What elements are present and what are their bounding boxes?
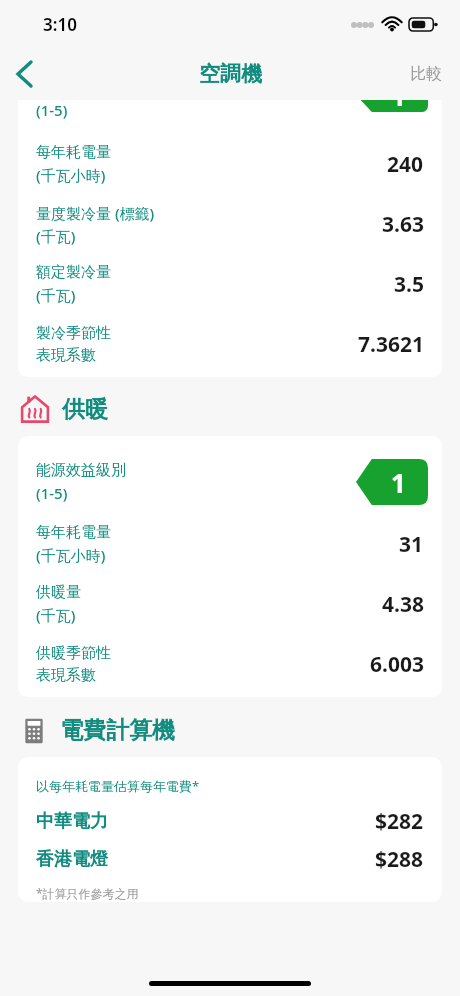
staticText: 3:10 [43, 13, 77, 36]
staticText: 能源效益級別 [36, 461, 126, 480]
staticText: 31 [399, 530, 424, 559]
staticText: (千瓦) [36, 285, 76, 305]
staticText: 空調機 [199, 61, 262, 87]
button[interactable]: 中華電力 [36, 807, 424, 836]
staticText: (千瓦) [36, 605, 76, 625]
staticText: 供暖季節性 [36, 644, 111, 663]
button[interactable]: 量度製冷量 (標籤) [18, 194, 442, 254]
staticText: (千瓦) [36, 226, 76, 246]
staticText: 香港電燈 [36, 848, 375, 871]
button[interactable]: 香港電燈 [36, 845, 424, 874]
button[interactable]: 每年耗電量 [18, 514, 442, 574]
staticText: 製冷季節性 [36, 324, 111, 343]
staticText: 表現系數 [36, 346, 96, 365]
staticText: 中華電力 [36, 810, 375, 833]
staticText: 1 [391, 465, 406, 500]
staticText: 每年耗電量 [36, 523, 111, 542]
staticText: (1-5) [36, 483, 68, 503]
button[interactable]: 額定製冷量 [18, 254, 442, 314]
staticText: *計算只作參考之用 [36, 885, 139, 901]
staticText: (1-5) [36, 100, 68, 120]
staticText: 1 [391, 100, 406, 112]
staticText: 電費計算機 [60, 716, 175, 745]
button[interactable]: 能源效益級別 [18, 450, 442, 514]
staticText: 供暖量 [36, 583, 81, 602]
button[interactable]: 比較 [392, 54, 460, 94]
staticText: 7.3621 [358, 330, 424, 359]
staticText: 量度製冷量 (標籤) [36, 203, 155, 223]
staticText: 表現系數 [36, 666, 96, 685]
staticText: (千瓦小時) [36, 165, 106, 185]
staticText: 額定製冷量 [36, 263, 111, 282]
staticText: 每年耗電量 [36, 143, 111, 162]
staticText: 3.5 [394, 270, 424, 299]
button[interactable]: 製冷季節性 [18, 314, 442, 374]
staticText: 供暖 [62, 395, 108, 424]
button[interactable]: 每年耗電量 [18, 134, 442, 194]
staticText: 比較 [410, 64, 442, 84]
staticText: (千瓦小時) [36, 545, 106, 565]
staticText: 以每年耗電量估算每年電費* [36, 777, 200, 795]
staticText: 240 [387, 150, 424, 179]
staticText: 6.003 [370, 650, 424, 679]
button[interactable]: 供暖季節性 [18, 634, 442, 694]
staticText: $288 [375, 845, 424, 874]
staticText: $282 [375, 807, 424, 836]
staticText: 3.63 [382, 210, 424, 239]
button[interactable]: Back [0, 50, 48, 98]
staticText: 4.38 [382, 590, 424, 619]
button[interactable]: 供暖量 [18, 574, 442, 634]
